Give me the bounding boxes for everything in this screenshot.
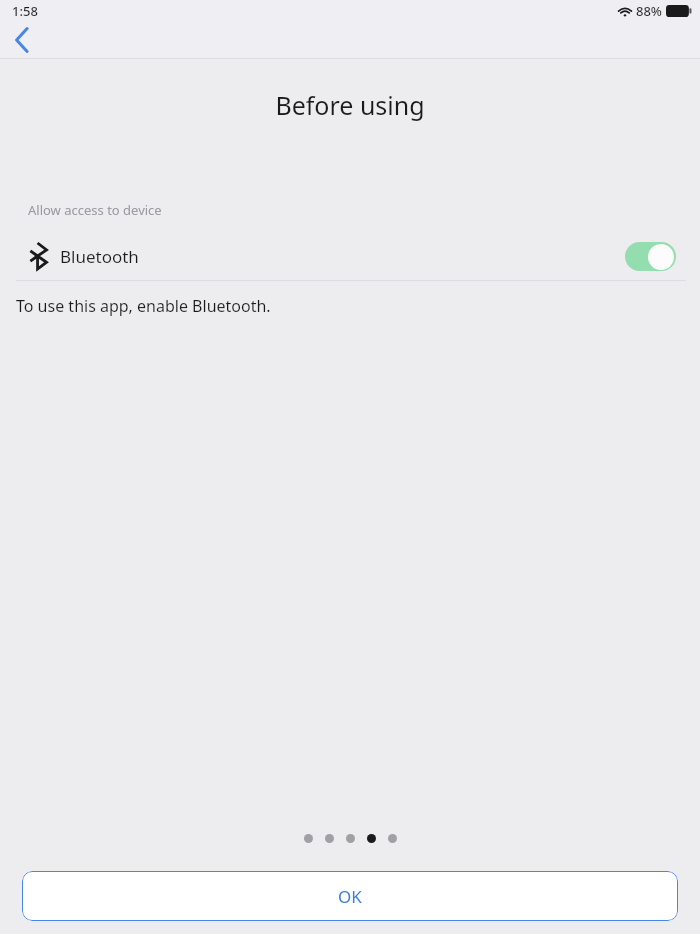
button[interactable]: OK <box>22 871 678 921</box>
staticText: OK <box>338 885 362 908</box>
staticText: Bluetooth <box>60 245 139 268</box>
button[interactable]: Back <box>0 22 44 58</box>
staticText: 1:58 <box>12 2 38 20</box>
button[interactable]: Bluetooth toggle, on <box>625 242 676 271</box>
staticText: Allow access to device <box>28 201 162 219</box>
staticText: 88% <box>636 2 662 20</box>
staticText: To use this app, enable Bluetooth. <box>16 295 271 317</box>
button[interactable]: Bluetooth <box>0 232 700 280</box>
staticText: Before using <box>275 88 425 122</box>
